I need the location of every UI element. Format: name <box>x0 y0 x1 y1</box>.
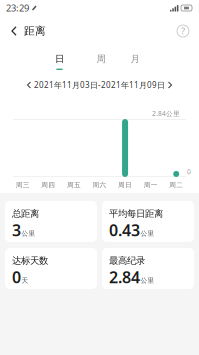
staticText: 公里 <box>140 276 154 285</box>
staticText: 达标天数 <box>12 255 48 266</box>
staticText: ? <box>181 25 185 37</box>
staticText: 2021年11月03日-2021年11月09日 <box>34 80 165 90</box>
staticText: 日 <box>55 53 64 65</box>
button[interactable]: 达标天数 <box>5 248 97 289</box>
staticText: 周六 <box>92 181 106 189</box>
staticText: 2.84 <box>109 266 140 288</box>
staticText: 天 <box>21 276 28 285</box>
button[interactable]: 总距离 <box>5 201 97 242</box>
button[interactable]: Next period <box>165 78 175 92</box>
staticText: 周一 <box>144 181 158 189</box>
staticText: 距离 <box>24 24 46 37</box>
staticText: 0 <box>12 266 21 288</box>
button[interactable]: 周 <box>90 48 112 72</box>
staticText: 最高纪录 <box>109 255 145 266</box>
staticText: 23:29 <box>6 2 29 14</box>
staticText: 公里 <box>140 229 154 238</box>
button[interactable]: 最高纪录 <box>102 248 194 289</box>
staticText: 公里 <box>21 229 35 238</box>
button[interactable]: Help <box>171 19 195 43</box>
staticText: 周二 <box>169 181 183 189</box>
staticText: 周日 <box>118 181 132 189</box>
button[interactable]: 月 <box>124 48 146 72</box>
staticText: 周三 <box>16 181 30 189</box>
staticText: 总距离 <box>12 208 39 219</box>
staticText: 平均每日距离 <box>109 208 163 219</box>
staticText: 月 <box>130 53 139 65</box>
button[interactable]: 平均每日距离 <box>102 201 194 242</box>
button[interactable]: 日 <box>48 48 70 72</box>
staticText: 周 <box>96 53 105 65</box>
staticText: 0 <box>187 167 191 176</box>
staticText: 周四 <box>41 181 55 189</box>
button[interactable]: Previous period <box>24 78 34 92</box>
staticText: 3 <box>12 219 21 241</box>
staticText: 2.84公里 <box>152 109 180 118</box>
staticText: 0.43 <box>109 219 140 241</box>
button[interactable]: Back <box>4 19 24 43</box>
staticText: 周五 <box>67 181 81 189</box>
